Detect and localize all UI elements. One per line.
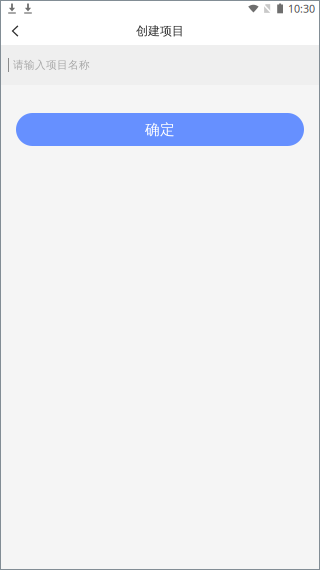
button[interactable]: Back: [0, 17, 30, 45]
staticText: 确定: [145, 120, 175, 138]
staticText: 10:30: [288, 1, 315, 16]
staticText: 创建项目: [136, 24, 184, 38]
staticText: 请输入项目名称: [13, 58, 90, 71]
button[interactable]: 确定: [16, 113, 304, 146]
button[interactable]: 请输入项目名称: [0, 45, 320, 85]
